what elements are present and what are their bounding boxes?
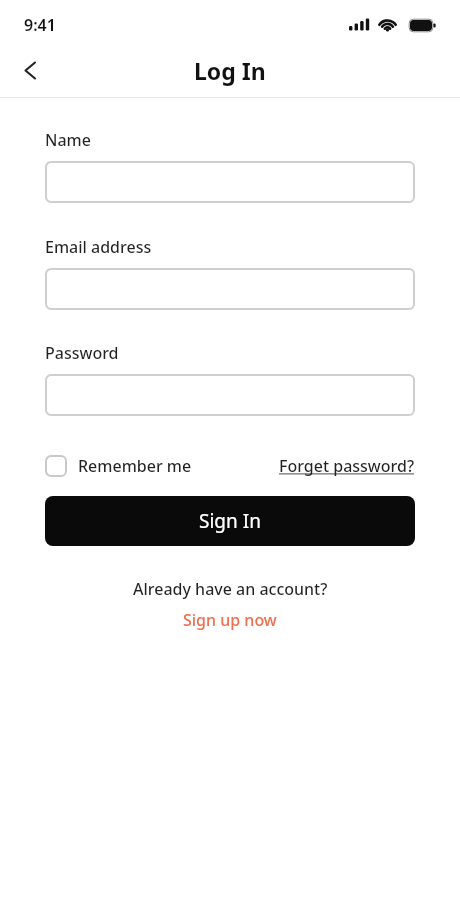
staticText: Sign In [199,508,261,534]
staticText: Already have an account? [133,578,328,600]
staticText: Password [45,342,119,364]
button[interactable]: Sign In [45,496,415,546]
staticText: Remember me [78,455,192,477]
button[interactable] [13,54,46,87]
staticText: 9:41 [24,14,56,36]
staticText: Name [45,129,91,151]
button[interactable]: Forget password? [279,455,415,477]
button[interactable]: Sign up now [183,609,277,631]
button[interactable] [45,161,415,203]
staticText: Email address [45,236,152,258]
button[interactable] [45,268,415,310]
button[interactable] [45,374,415,416]
button[interactable]: Remember me [45,455,192,477]
staticText: Log In [194,55,266,86]
